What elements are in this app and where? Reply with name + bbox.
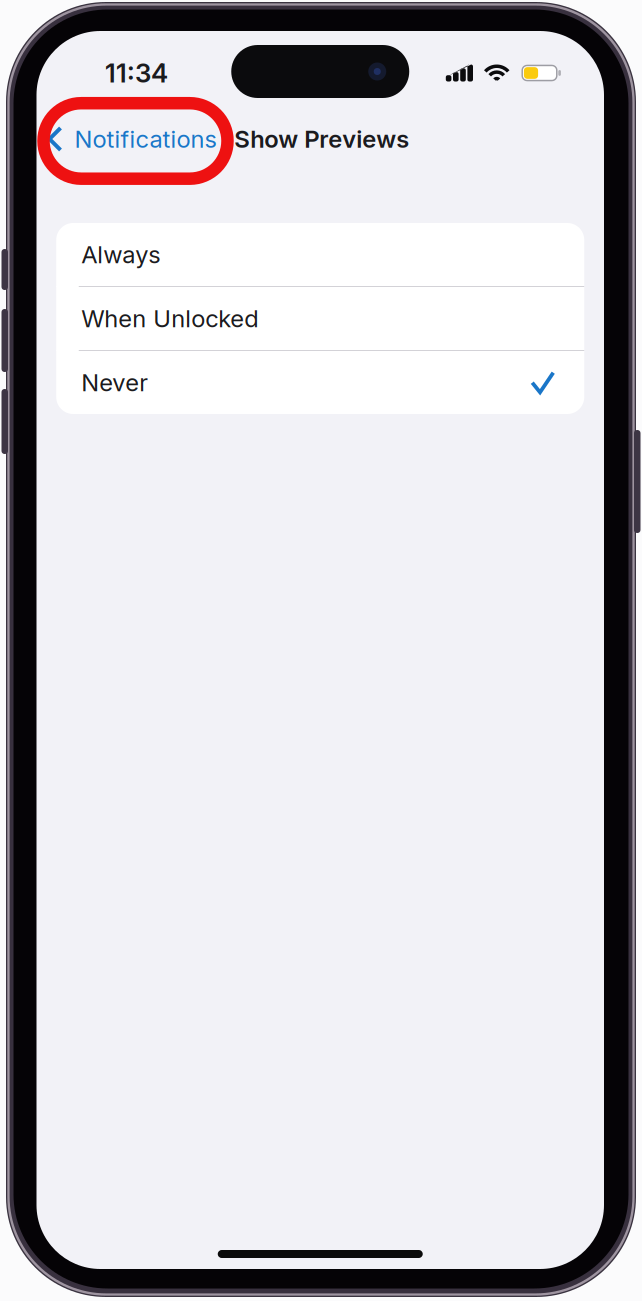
- button[interactable]: Never: [56, 351, 584, 414]
- button[interactable]: Notifications: [36, 106, 256, 172]
- staticText: 11:34: [105, 57, 168, 89]
- button[interactable]: Always: [56, 223, 584, 286]
- button[interactable]: When Unlocked: [56, 287, 584, 350]
- staticText: Never: [81, 368, 148, 397]
- staticText: Always: [81, 240, 160, 269]
- staticText: Show Previews: [234, 124, 409, 153]
- staticText: When Unlocked: [81, 304, 258, 333]
- staticText: Notifications: [74, 124, 216, 153]
